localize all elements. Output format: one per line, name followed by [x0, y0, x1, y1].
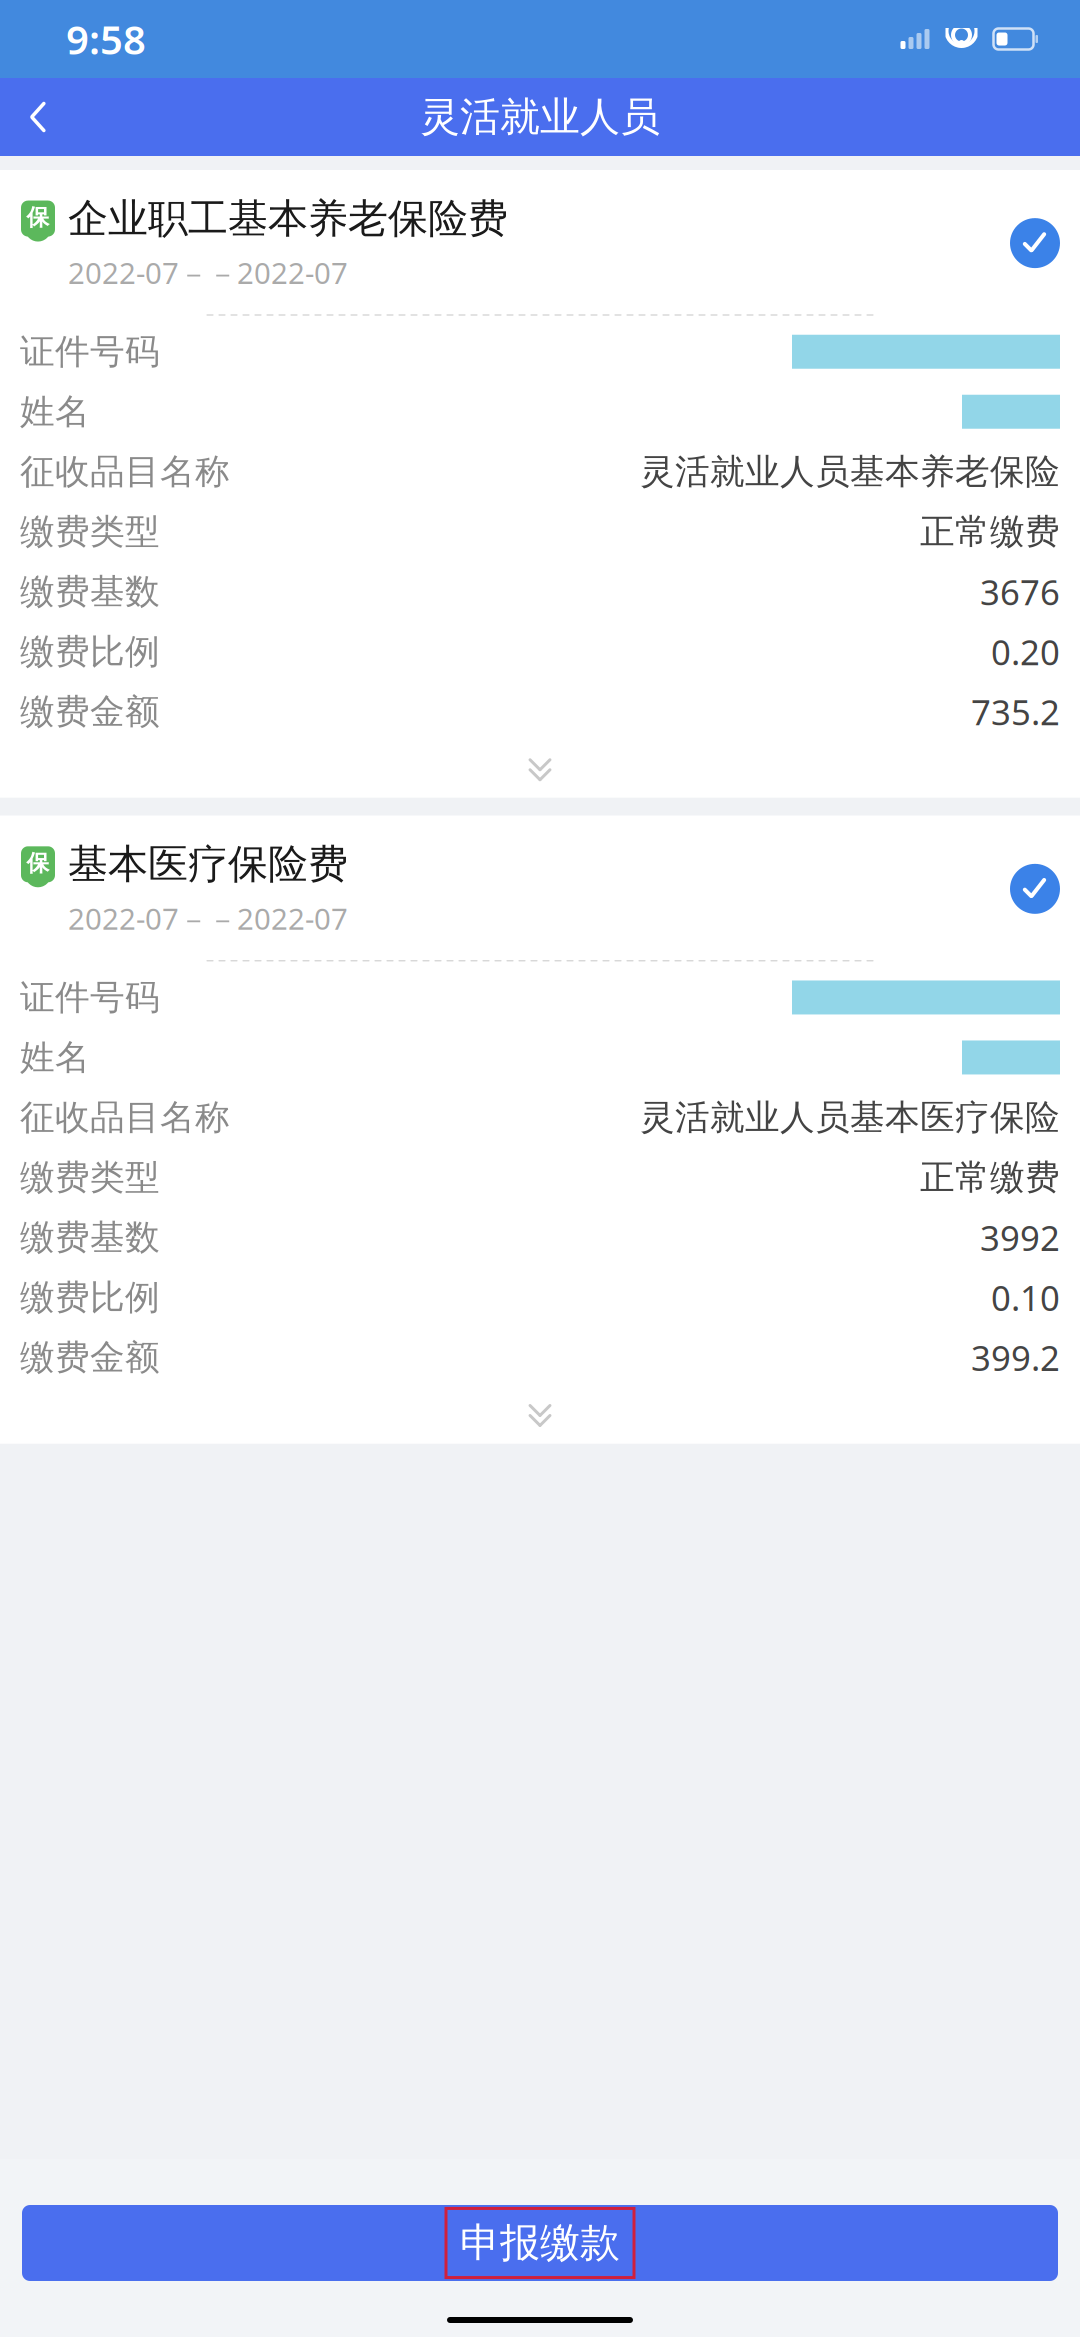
button[interactable]: 申报缴款	[0, 2159, 1080, 2281]
staticText: 保	[26, 204, 49, 231]
staticText: 399.2	[971, 1334, 1060, 1380]
staticText: 缴费类型	[20, 510, 160, 553]
staticText: 申报缴款	[460, 2218, 620, 2267]
staticText: 姓名	[20, 390, 90, 433]
staticText: 缴费金额	[20, 690, 160, 733]
staticText: 证件号码	[20, 330, 160, 373]
button[interactable]: 返回	[0, 78, 76, 156]
staticText: 姓名	[20, 1036, 90, 1079]
staticText: 正常缴费	[920, 1156, 1060, 1199]
staticText: 3992	[980, 1214, 1060, 1260]
staticText: 0.20	[991, 629, 1060, 675]
staticText: 企业职工基本养老保险费	[68, 194, 508, 243]
staticText: 9:58	[66, 12, 146, 65]
staticText: 证件号码	[20, 976, 160, 1019]
staticText: 2022-07－－2022-07	[68, 899, 348, 938]
staticText: 缴费基数	[20, 570, 160, 613]
staticText: 灵活就业人员基本养老保险	[640, 450, 1060, 493]
staticText: 正常缴费	[920, 510, 1060, 553]
staticText: 保	[26, 849, 49, 877]
button[interactable]: 保	[0, 170, 1080, 314]
staticText: 基本医疗保险费	[68, 840, 348, 889]
button[interactable]: 保	[0, 816, 1080, 960]
staticText: 缴费比例	[20, 1276, 160, 1319]
staticText: 2022-07－－2022-07	[68, 253, 348, 292]
staticText: 0.10	[991, 1274, 1060, 1320]
staticText: 缴费基数	[20, 1216, 160, 1259]
staticText: 缴费金额	[20, 1336, 160, 1379]
staticText: 征收品目名称	[20, 450, 230, 493]
staticText: 灵活就业人员基本医疗保险	[640, 1096, 1060, 1139]
staticText: 735.2	[971, 689, 1060, 735]
staticText: 灵活就业人员	[420, 92, 660, 141]
staticText: 缴费类型	[20, 1156, 160, 1199]
staticText: 3676	[980, 569, 1060, 615]
staticText: 缴费比例	[20, 630, 160, 673]
staticText: 征收品目名称	[20, 1096, 230, 1139]
